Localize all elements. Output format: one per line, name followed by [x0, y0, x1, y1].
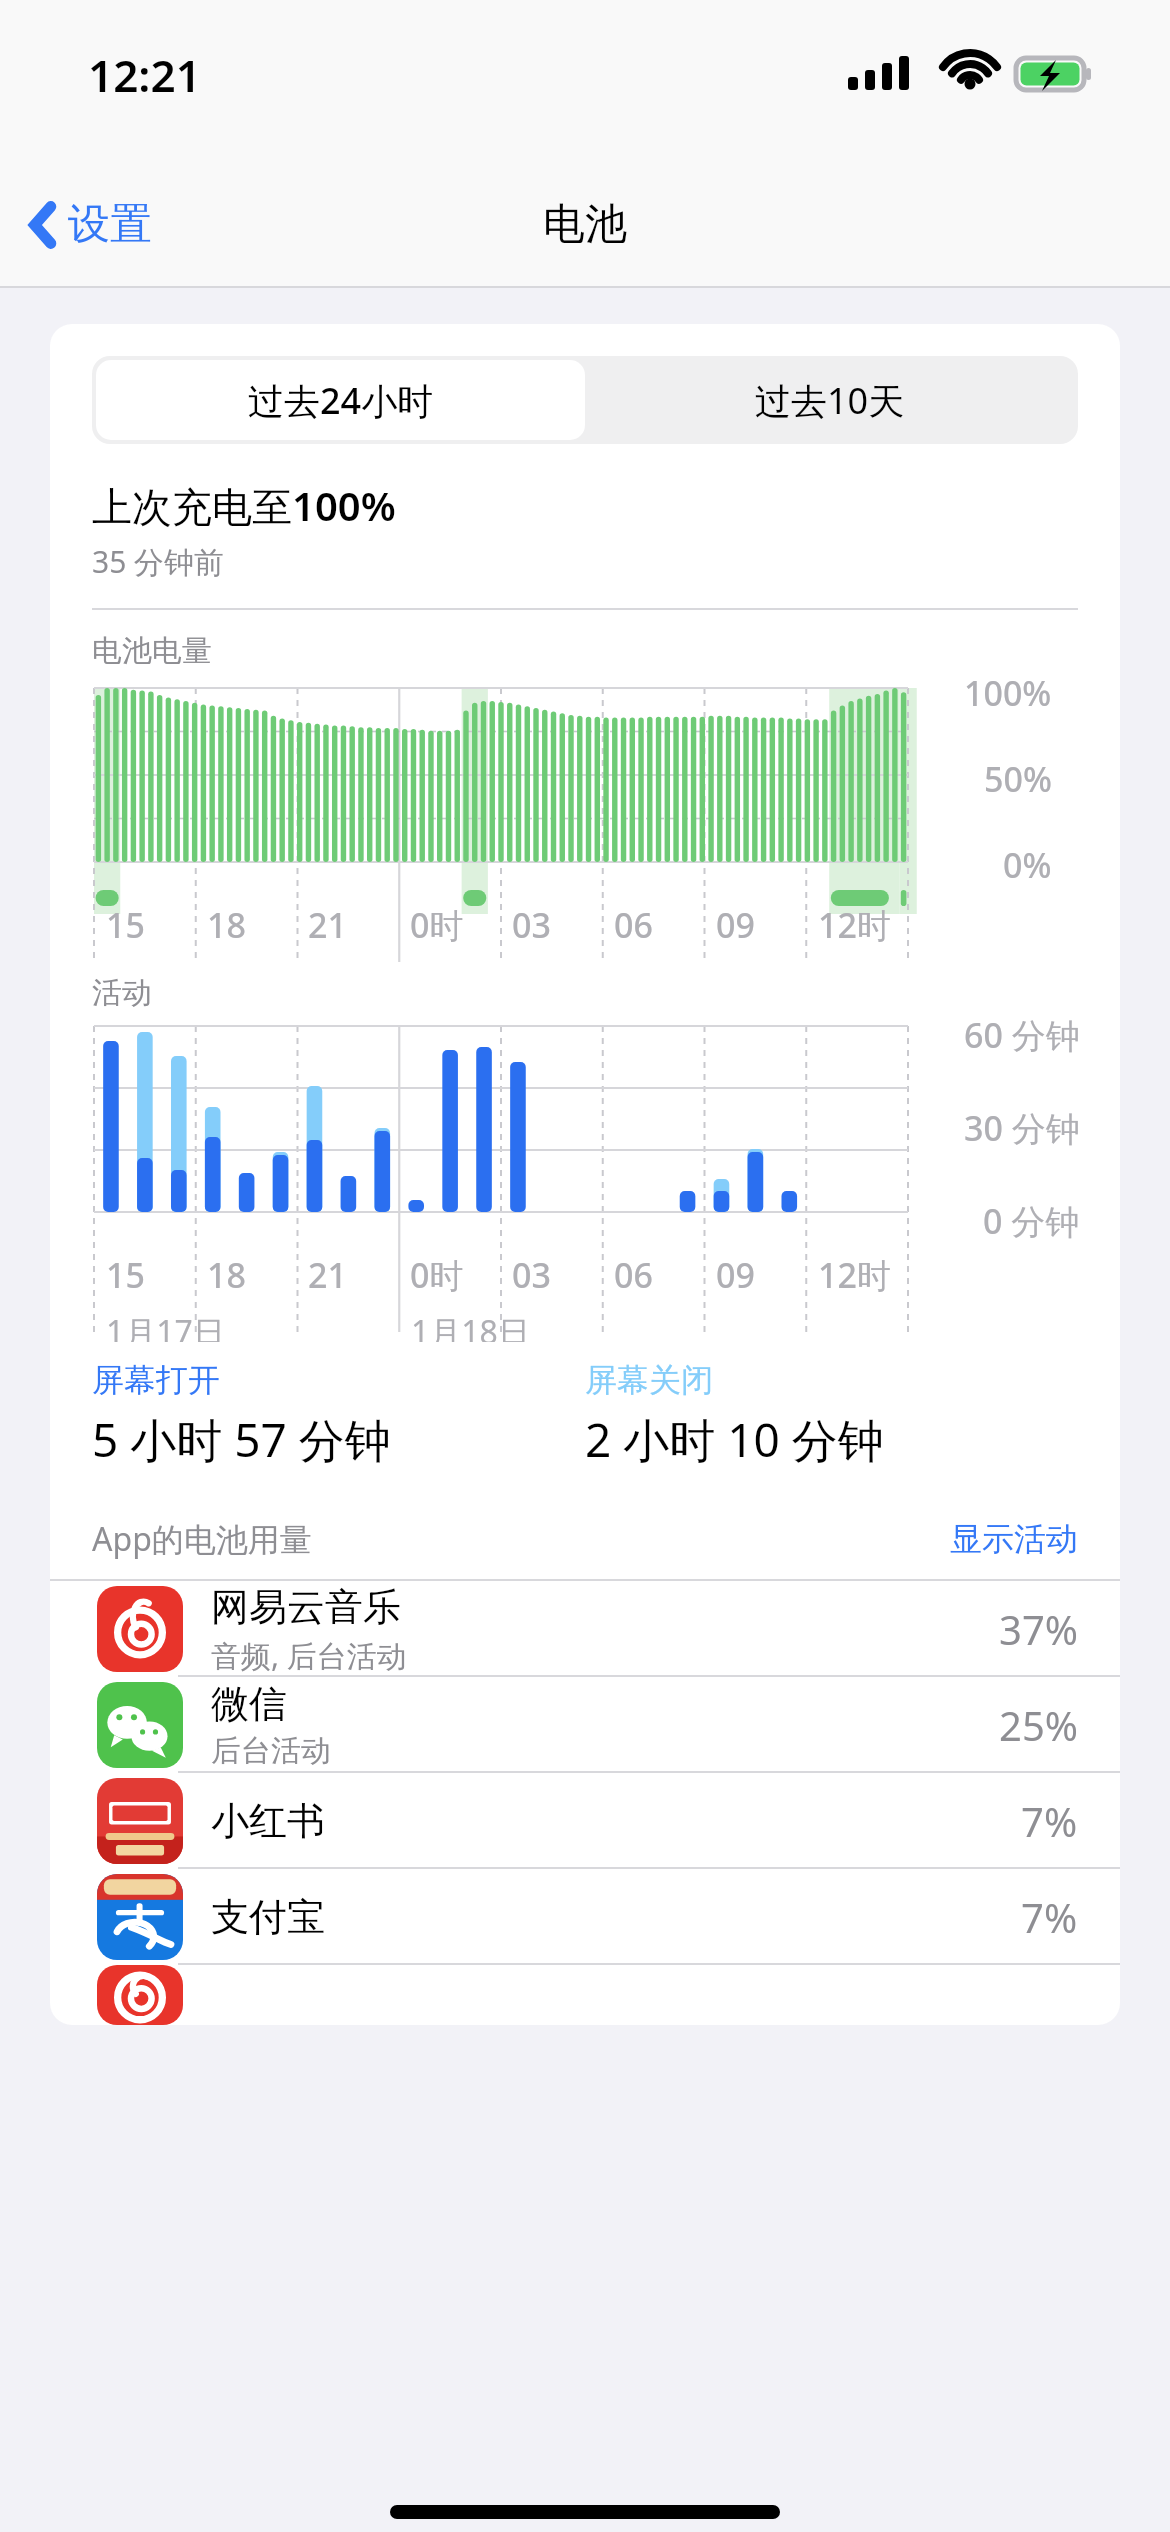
staticText: 03: [512, 1252, 551, 1298]
staticText: 电池: [543, 198, 627, 251]
staticText: 15: [106, 1252, 145, 1298]
staticText: 屏幕打开: [92, 1360, 220, 1400]
staticText: 09: [716, 1252, 755, 1298]
staticText: 06: [614, 902, 653, 948]
staticText: 15: [106, 902, 145, 948]
staticText: 12时: [818, 1252, 891, 1298]
staticText: 37%: [999, 1602, 1078, 1656]
staticText: 显示活动: [950, 1519, 1078, 1559]
staticText: 电池电量: [92, 632, 212, 670]
staticText: 35 分钟前: [92, 541, 225, 582]
staticText: 0 分钟: [983, 1198, 1080, 1244]
staticText: 03: [512, 902, 551, 948]
staticText: 过去10天: [755, 376, 905, 425]
staticText: 过去24小时: [248, 376, 434, 425]
staticText: 后台活动: [211, 1732, 331, 1770]
staticText: 100%: [964, 670, 1052, 716]
staticText: 小红书: [211, 1797, 325, 1845]
staticText: 21: [308, 1252, 347, 1298]
staticText: 7%: [1021, 1794, 1078, 1848]
staticText: 12:21: [88, 45, 201, 105]
staticText: 5 小时 57 分钟: [92, 1408, 391, 1471]
staticText: 25%: [999, 1698, 1078, 1752]
staticText: 0时: [410, 1252, 464, 1298]
button[interactable]: 网易云音乐: [50, 1581, 1120, 1677]
staticText: 0时: [410, 902, 464, 948]
button[interactable]: 过去24小时: [96, 360, 585, 440]
staticText: 0%: [1003, 842, 1052, 888]
staticText: App的电池用量: [92, 1517, 312, 1561]
staticText: 屏幕关闭: [585, 1360, 713, 1400]
staticText: 上次充电至100%: [92, 478, 396, 533]
staticText: 06: [614, 1252, 653, 1298]
staticText: 12时: [818, 902, 891, 948]
button[interactable]: 小红书: [50, 1773, 1120, 1869]
button[interactable]: [50, 1965, 1120, 2025]
staticText: 30 分钟: [964, 1105, 1080, 1151]
staticText: 50%: [984, 756, 1052, 802]
staticText: 设置: [68, 198, 152, 251]
staticText: 网易云音乐: [211, 1583, 401, 1631]
staticText: 1月18日: [411, 1310, 530, 1342]
button[interactable]: 显示活动: [950, 1519, 1078, 1559]
staticText: 21: [308, 902, 347, 948]
button[interactable]: 支付宝: [50, 1869, 1120, 1965]
button[interactable]: 过去10天: [585, 360, 1074, 440]
staticText: 微信: [211, 1680, 287, 1728]
staticText: 活动: [92, 974, 152, 1012]
staticText: 支付宝: [211, 1893, 325, 1941]
staticText: 09: [716, 902, 755, 948]
staticText: 7%: [1021, 1890, 1078, 1944]
staticText: 2 小时 10 分钟: [585, 1408, 884, 1471]
staticText: 音频, 后台活动: [211, 1635, 407, 1676]
staticText: 18: [207, 902, 246, 948]
staticText: 18: [207, 1252, 246, 1298]
button[interactable]: 微信: [50, 1677, 1120, 1773]
button[interactable]: 设置: [22, 190, 160, 259]
staticText: 60 分钟: [964, 1012, 1080, 1058]
staticText: 1月17日: [106, 1310, 225, 1342]
